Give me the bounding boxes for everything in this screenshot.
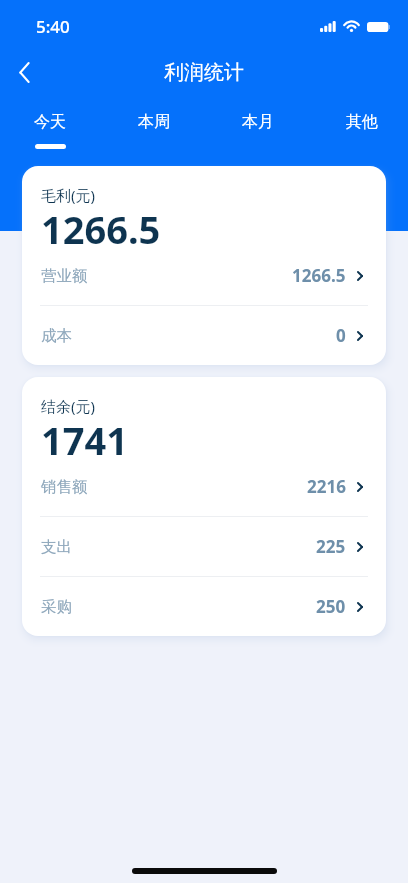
button[interactable]: 采购 — [22, 577, 386, 636]
staticText: 其他 — [346, 112, 378, 132]
staticText: 250 — [316, 595, 346, 618]
staticText: 今天 — [34, 112, 66, 132]
staticText: 毛利(元) — [41, 185, 96, 205]
staticText: 结余(元) — [41, 396, 96, 416]
button[interactable]: 支出 — [22, 517, 386, 576]
staticText: 1741 — [41, 414, 128, 466]
staticText: 销售额 — [41, 477, 88, 497]
button[interactable]: 其他 — [310, 98, 408, 150]
staticText: 本周 — [138, 112, 170, 132]
staticText: 225 — [316, 535, 346, 558]
button[interactable]: 销售额 — [22, 457, 386, 516]
staticText: 利润统计 — [164, 60, 244, 85]
button[interactable]: 成本 — [22, 306, 386, 365]
staticText: 支出 — [41, 537, 72, 557]
staticText: 采购 — [41, 597, 72, 617]
button[interactable]: Back — [0, 48, 48, 96]
button[interactable]: 营业额 — [22, 246, 386, 305]
button[interactable]: 本月 — [206, 98, 310, 150]
button[interactable]: 本周 — [102, 98, 206, 150]
staticText: 1266.5 — [292, 264, 346, 287]
staticText: 1266.5 — [41, 203, 161, 255]
staticText: 2216 — [307, 475, 346, 498]
staticText: 成本 — [41, 326, 72, 346]
staticText: 5:40 — [36, 15, 70, 38]
button[interactable]: 今天 — [0, 98, 102, 150]
staticText: 0 — [336, 324, 346, 347]
staticText: 营业额 — [41, 266, 88, 286]
staticText: 本月 — [242, 112, 274, 132]
